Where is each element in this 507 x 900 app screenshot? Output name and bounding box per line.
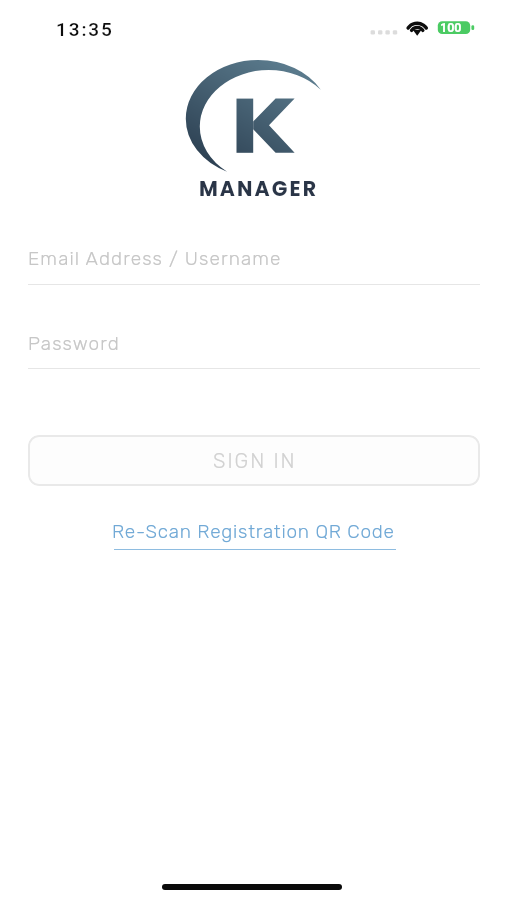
other: Status icons [0, 0, 507, 46]
staticText: Email Address / Username [28, 247, 282, 270]
button[interactable]: Re-Scan Registration QR Code [108, 520, 399, 550]
button[interactable]: SIGN IN [28, 435, 480, 486]
staticText: Password [28, 332, 120, 355]
staticText: Re-Scan Registration QR Code [112, 520, 395, 543]
button[interactable]: Password [28, 318, 480, 366]
staticText: 100 [440, 20, 462, 35]
staticText: SIGN IN [213, 449, 297, 473]
button[interactable]: Email Address / Username [28, 233, 480, 281]
staticText: MANAGER [5, 174, 507, 203]
staticText: 13:35 [56, 18, 114, 40]
